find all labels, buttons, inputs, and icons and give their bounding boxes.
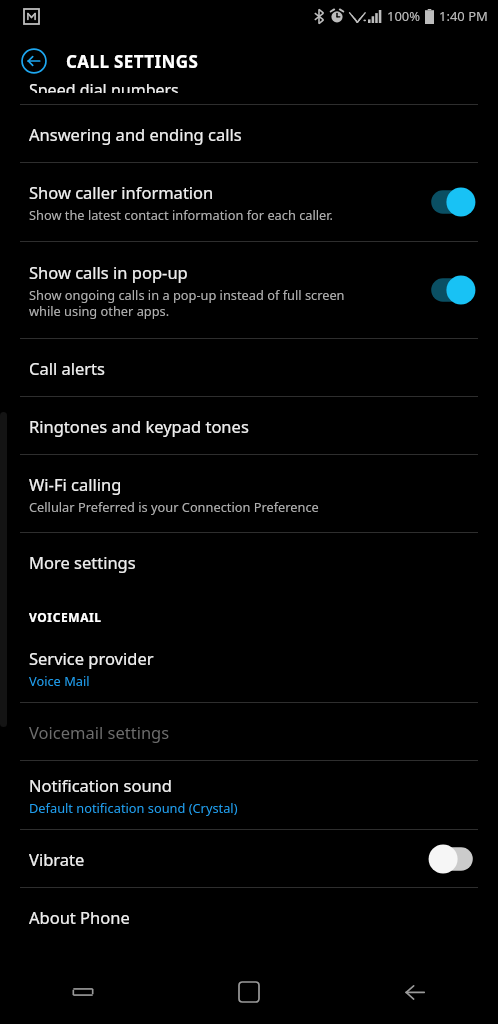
staticText: Vibrate	[29, 848, 85, 870]
staticText: Voicemail settings	[29, 721, 170, 743]
staticText: Show caller information	[29, 181, 214, 203]
staticText: Call alerts	[29, 357, 105, 379]
staticText: Wi-Fi calling	[29, 473, 122, 495]
button[interactable]: About Phone	[0, 888, 498, 945]
button[interactable]: Recent apps	[0, 960, 166, 1024]
staticText: VOICEMAIL	[29, 609, 102, 625]
button[interactable]: Notification sound	[0, 761, 498, 829]
button[interactable]: Vibrate	[0, 830, 498, 887]
staticText: More settings	[29, 551, 136, 573]
button[interactable]: Wi-Fi calling	[0, 455, 498, 532]
staticText: Notification sound	[29, 774, 172, 796]
staticText: Service provider	[29, 647, 154, 669]
staticText: Speed dial numbers	[29, 79, 179, 93]
button[interactable]: Back	[332, 960, 498, 1024]
button[interactable]: Answering and ending calls	[0, 105, 498, 162]
staticText: Ringtones and keypad tones	[29, 415, 249, 437]
staticText: Show the latest contact information for …	[29, 206, 333, 223]
button[interactable]: Back	[14, 41, 54, 81]
staticText: About Phone	[29, 906, 130, 928]
staticText: Default notification sound (Crystal)	[29, 799, 238, 816]
staticText: 1:40 PM	[439, 7, 488, 25]
button[interactable]: Ringtones and keypad tones	[0, 397, 498, 454]
button[interactable]: Toggle on	[426, 275, 478, 305]
button[interactable]: Show calls in pop-up	[0, 242, 498, 338]
button[interactable]: Voicemail settings	[0, 703, 498, 760]
button[interactable]: Home	[166, 960, 332, 1024]
button[interactable]: Toggle on	[426, 187, 478, 217]
button[interactable]: Toggle off	[426, 844, 478, 874]
button[interactable]: More settings	[0, 533, 498, 590]
staticText: Show ongoing calls in a pop-up instead o…	[29, 286, 372, 320]
button[interactable]: Call alerts	[0, 339, 498, 396]
button[interactable]: Service provider	[0, 634, 498, 702]
button[interactable]: Show caller information	[0, 163, 498, 241]
staticText: Cellular Preferred is your Connection Pr…	[29, 498, 319, 515]
staticText: CALL SETTINGS	[66, 50, 199, 73]
staticText: Voice Mail	[29, 672, 90, 689]
staticText: Answering and ending calls	[29, 123, 242, 145]
staticText: Show calls in pop-up	[29, 261, 188, 283]
staticText: 100%	[387, 7, 421, 25]
